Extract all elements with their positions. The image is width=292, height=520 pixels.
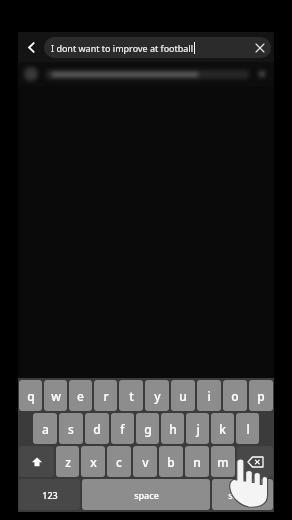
staticText: w bbox=[51, 388, 61, 404]
staticText: u bbox=[179, 388, 187, 404]
staticText: e bbox=[77, 388, 84, 404]
button[interactable]: g bbox=[136, 413, 159, 444]
staticText: v bbox=[142, 454, 149, 470]
staticText: space bbox=[134, 489, 159, 501]
button[interactable]: z bbox=[56, 446, 79, 477]
staticText: p bbox=[257, 388, 265, 404]
staticText: d bbox=[93, 421, 101, 437]
staticText: I dont want to improve at football bbox=[51, 42, 193, 54]
button[interactable]: q bbox=[19, 380, 42, 411]
button[interactable]: p bbox=[249, 380, 273, 411]
button[interactable]: w bbox=[44, 380, 67, 411]
button[interactable]: Backspace bbox=[237, 446, 273, 477]
staticText: z bbox=[65, 454, 71, 470]
staticText: search bbox=[228, 489, 257, 501]
button[interactable]: d bbox=[85, 413, 109, 444]
button[interactable]: Shift bbox=[19, 446, 54, 477]
button[interactable]: y bbox=[145, 380, 169, 411]
staticText: i bbox=[207, 388, 211, 404]
staticText: n bbox=[193, 454, 201, 470]
button[interactable]: 123 bbox=[19, 479, 80, 510]
button[interactable]: s bbox=[59, 413, 83, 444]
staticText: h bbox=[169, 421, 177, 437]
button[interactable]: t bbox=[119, 380, 143, 411]
button[interactable]: r bbox=[94, 380, 117, 411]
button[interactable]: m bbox=[211, 446, 235, 477]
button[interactable]: b bbox=[159, 446, 183, 477]
button[interactable]: v bbox=[133, 446, 157, 477]
button[interactable]: h bbox=[161, 413, 184, 444]
button[interactable]: e bbox=[69, 380, 92, 411]
button[interactable]: c bbox=[107, 446, 131, 477]
button[interactable]: f bbox=[111, 413, 134, 444]
button[interactable]: x bbox=[81, 446, 105, 477]
button[interactable]: l bbox=[236, 413, 259, 444]
staticText: q bbox=[27, 388, 35, 404]
button[interactable]: I dont want to improve at football bbox=[44, 37, 271, 58]
button[interactable]: n bbox=[185, 446, 209, 477]
staticText: l bbox=[246, 421, 250, 437]
staticText: r bbox=[103, 388, 109, 404]
staticText: k bbox=[219, 421, 226, 437]
button[interactable]: k bbox=[211, 413, 234, 444]
staticText: s bbox=[68, 421, 74, 437]
staticText: c bbox=[116, 454, 122, 470]
button[interactable]: search bbox=[212, 479, 273, 510]
staticText: f bbox=[120, 421, 125, 437]
staticText: y bbox=[154, 388, 161, 404]
staticText: 123 bbox=[42, 489, 58, 501]
staticText: b bbox=[167, 454, 175, 470]
button[interactable]: a bbox=[33, 413, 57, 444]
button[interactable] bbox=[18, 62, 274, 86]
staticText: m bbox=[217, 454, 229, 470]
button[interactable]: space bbox=[82, 479, 210, 510]
staticText: a bbox=[42, 421, 49, 437]
button[interactable]: Back bbox=[18, 32, 44, 62]
button[interactable]: u bbox=[171, 380, 195, 411]
button[interactable]: j bbox=[186, 413, 209, 444]
button[interactable]: Clear search bbox=[251, 39, 268, 56]
button[interactable]: o bbox=[223, 380, 247, 411]
button[interactable]: i bbox=[197, 380, 221, 411]
staticText: g bbox=[144, 421, 152, 437]
staticText: j bbox=[196, 421, 200, 437]
staticText: o bbox=[231, 388, 239, 404]
staticText: t bbox=[129, 388, 134, 404]
staticText: x bbox=[90, 454, 97, 470]
